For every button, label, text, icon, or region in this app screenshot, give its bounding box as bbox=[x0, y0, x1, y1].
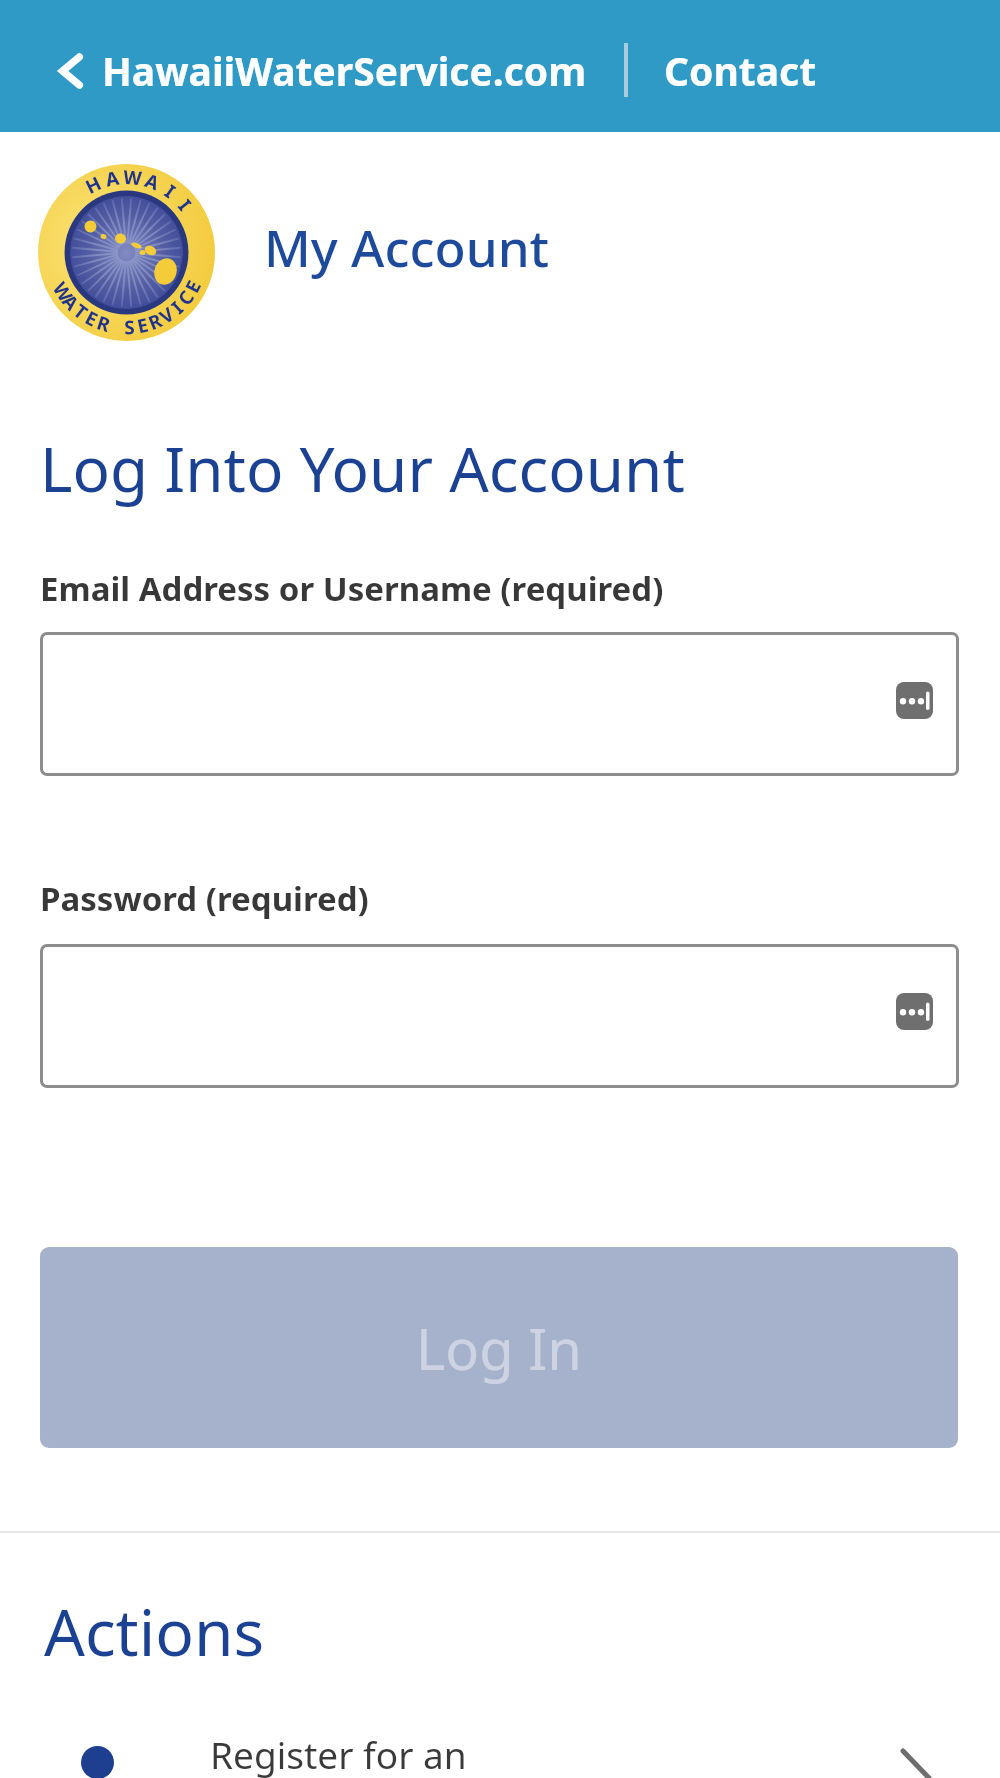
button[interactable]: Log In bbox=[40, 1247, 958, 1448]
button[interactable] bbox=[40, 632, 959, 776]
button[interactable]: HawaiiWaterService.com bbox=[58, 44, 587, 97]
staticText: Contact bbox=[664, 44, 817, 97]
staticText: Register for an bbox=[210, 1729, 467, 1778]
staticText: Email Address or Username (required) bbox=[40, 566, 664, 611]
button[interactable]: Register for an bbox=[40, 1715, 960, 1778]
staticText: Log In bbox=[416, 1310, 582, 1386]
staticText: Password (required) bbox=[40, 876, 369, 921]
staticText: Actions bbox=[44, 1588, 265, 1675]
staticText: HawaiiWaterService.com bbox=[102, 44, 587, 97]
staticText: My Account bbox=[264, 212, 550, 281]
button[interactable]: Contact bbox=[664, 44, 817, 97]
staticText: Log Into Your Account bbox=[40, 426, 685, 510]
button[interactable] bbox=[40, 944, 959, 1088]
